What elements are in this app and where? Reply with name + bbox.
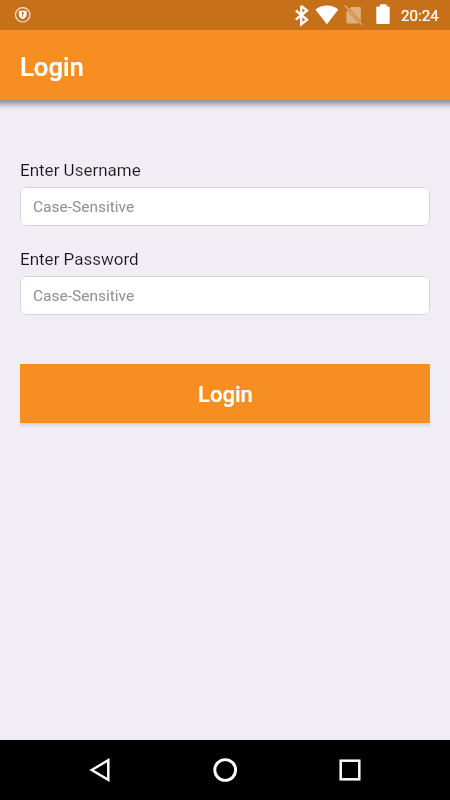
button[interactable]: Case-Sensitive	[20, 276, 430, 315]
staticText: Login	[20, 52, 84, 82]
staticText: Login	[198, 382, 253, 408]
staticText: 20:24	[401, 7, 439, 25]
staticText: Case-Sensitive	[33, 198, 135, 216]
button[interactable]: Home	[195, 740, 255, 800]
button[interactable]: Back	[70, 740, 130, 800]
button[interactable]: Recent apps	[320, 740, 380, 800]
staticText: Enter Password	[20, 249, 139, 269]
button[interactable]: Login	[20, 364, 430, 423]
button[interactable]: Case-Sensitive	[20, 187, 430, 226]
staticText: Case-Sensitive	[33, 287, 135, 305]
staticText: Enter Username	[20, 160, 141, 180]
